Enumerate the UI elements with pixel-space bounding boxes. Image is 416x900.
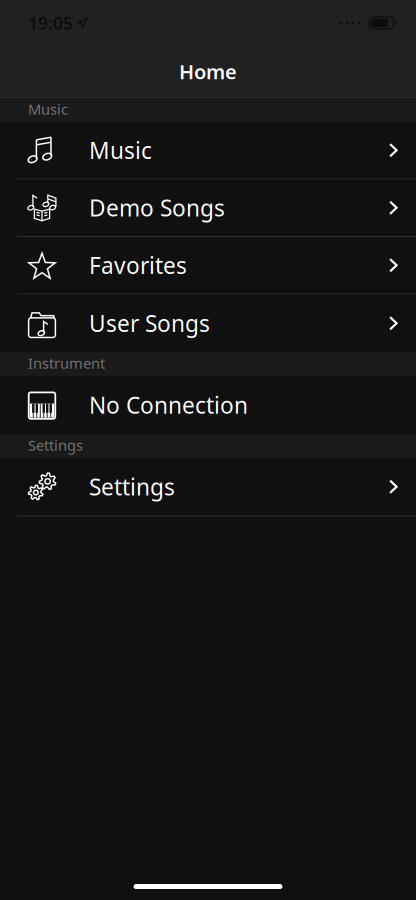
button[interactable]: Demo Songs: [0, 179, 416, 236]
staticText: Demo Songs: [89, 193, 225, 223]
button[interactable]: No Connection: [0, 376, 416, 434]
button[interactable]: Favorites: [0, 237, 416, 293]
button[interactable]: Settings: [0, 458, 416, 515]
button[interactable]: Music: [0, 122, 416, 178]
staticText: User Songs: [89, 308, 210, 338]
staticText: Settings: [28, 435, 83, 455]
staticText: Favorites: [89, 250, 187, 280]
staticText: Instrument: [28, 353, 105, 373]
staticText: Settings: [89, 472, 175, 502]
staticText: Home: [179, 58, 237, 85]
staticText: No Connection: [89, 390, 248, 420]
staticText: 19:05: [28, 11, 73, 34]
staticText: Music: [89, 135, 152, 165]
staticText: Music: [28, 99, 68, 119]
button[interactable]: User Songs: [0, 294, 416, 352]
